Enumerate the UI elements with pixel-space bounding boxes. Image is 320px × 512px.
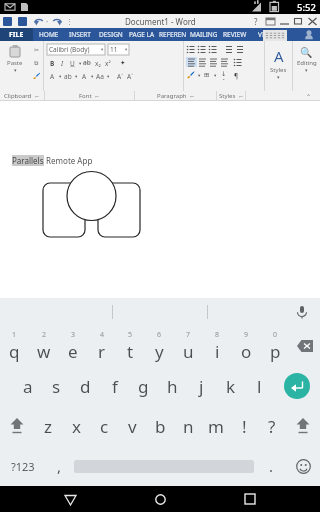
button[interactable]: A˅	[125, 71, 135, 81]
button[interactable]: REFEREN	[157, 28, 188, 41]
button[interactable]: f	[100, 366, 129, 406]
button[interactable]: ▾	[77, 58, 83, 68]
button[interactable]: 4	[87, 326, 116, 366]
button[interactable]: Emoji	[286, 446, 320, 486]
button[interactable]: l	[245, 366, 274, 406]
button[interactable]: ✦	[118, 58, 128, 68]
button[interactable]: 9	[232, 326, 261, 366]
button[interactable]: g	[129, 366, 158, 406]
button[interactable]: I	[57, 58, 67, 68]
button[interactable]: 0	[261, 326, 290, 366]
button[interactable]: z	[34, 406, 62, 446]
button[interactable]: 3	[58, 326, 87, 366]
button[interactable]: x	[62, 406, 90, 446]
button[interactable]: HOME	[33, 28, 64, 41]
button[interactable]: k	[216, 366, 245, 406]
button[interactable]: ▾	[73, 71, 79, 81]
button[interactable]: Undo	[34, 17, 44, 27]
button[interactable]: Help	[251, 16, 261, 26]
button[interactable]: A	[265, 41, 292, 91]
button[interactable]: 🔍	[293, 41, 320, 91]
button[interactable]: Calibri (Body)	[47, 44, 105, 55]
button[interactable]: Align	[208, 57, 219, 67]
button[interactable]: Shift	[0, 406, 34, 446]
button[interactable]: Enter	[274, 366, 320, 406]
button[interactable]: Minimize	[280, 17, 289, 26]
button[interactable]: x²	[103, 58, 113, 68]
button[interactable]: Paste	[8, 44, 23, 59]
button[interactable]: !	[230, 406, 258, 446]
button[interactable]: 11	[108, 44, 129, 55]
button[interactable]: List	[233, 57, 244, 67]
button[interactable]: Align	[186, 57, 197, 67]
button[interactable]: List	[197, 44, 208, 54]
button[interactable]: A	[47, 71, 57, 81]
button[interactable]: ▾	[89, 71, 95, 81]
button[interactable]: B	[47, 58, 57, 68]
button[interactable]: 6	[145, 326, 174, 366]
button[interactable]: Home	[140, 486, 180, 512]
button[interactable]: REVIEW	[219, 28, 250, 41]
button[interactable]: Indent	[234, 44, 245, 54]
button[interactable]: FILE	[0, 28, 33, 41]
button[interactable]: 5	[116, 326, 145, 366]
button[interactable]: v	[118, 406, 146, 446]
button[interactable]: ¶	[231, 70, 241, 80]
button[interactable]: Restore	[294, 17, 303, 26]
button[interactable]: A	[79, 71, 89, 81]
button[interactable]: Save	[18, 17, 27, 26]
button[interactable]: Recents	[230, 486, 270, 512]
button[interactable]: Indent	[223, 44, 234, 54]
button[interactable]: ↓↑	[221, 70, 231, 80]
button[interactable]: Voice input	[292, 302, 312, 322]
button[interactable]: Word	[3, 17, 12, 26]
button[interactable]: h	[158, 366, 187, 406]
button[interactable]: b	[146, 406, 174, 446]
button[interactable]: Backspace	[290, 326, 320, 366]
button[interactable]: m	[202, 406, 230, 446]
button[interactable]: a	[14, 366, 42, 406]
button[interactable]: PAGE LA	[126, 28, 157, 41]
button[interactable]: MAILING	[188, 28, 219, 41]
button[interactable]: Redo	[52, 17, 62, 27]
button[interactable]: Aa	[95, 71, 105, 81]
button[interactable]: x₂	[93, 58, 103, 68]
button[interactable]: ⊞	[202, 70, 212, 80]
button[interactable]: s	[42, 366, 71, 406]
button[interactable]: VIEW	[250, 28, 281, 41]
button[interactable]: d	[71, 366, 100, 406]
button[interactable]: Back	[50, 486, 90, 512]
button[interactable]: A˄	[115, 71, 125, 81]
button[interactable]: Account	[303, 29, 315, 41]
button[interactable]: ▾	[212, 70, 218, 80]
button[interactable]: Cut	[31, 44, 42, 55]
button[interactable]: .	[256, 446, 286, 486]
button[interactable]: 1	[0, 326, 29, 366]
button[interactable]: 8	[203, 326, 232, 366]
button[interactable]: ?	[258, 406, 286, 446]
button[interactable]: INSERT	[64, 28, 95, 41]
button[interactable]: 2	[29, 326, 58, 366]
button[interactable]: ▾	[57, 71, 63, 81]
button[interactable]: U	[67, 58, 77, 68]
button[interactable]: ?123	[0, 446, 46, 486]
button[interactable]: Space	[74, 446, 254, 486]
button[interactable]: Copy	[31, 57, 42, 68]
button[interactable]: 🖌	[186, 70, 196, 80]
button[interactable]: ab	[63, 71, 73, 81]
button[interactable]: Shift	[286, 406, 320, 446]
button[interactable]: ▾	[196, 70, 202, 80]
button[interactable]: c	[90, 406, 118, 446]
button[interactable]: DESIGN	[95, 28, 126, 41]
button[interactable]: Ribbon options	[266, 17, 275, 26]
button[interactable]: ▾	[105, 71, 111, 81]
button[interactable]: j	[187, 366, 216, 406]
button[interactable]: Align	[219, 57, 230, 67]
button[interactable]: ,	[46, 446, 72, 486]
button[interactable]: List	[208, 44, 219, 54]
button[interactable]: 7	[174, 326, 203, 366]
button[interactable]: abc	[83, 58, 93, 68]
button[interactable]: n	[174, 406, 202, 446]
button[interactable]: Format painter	[31, 70, 42, 81]
button[interactable]: Close	[308, 17, 317, 26]
